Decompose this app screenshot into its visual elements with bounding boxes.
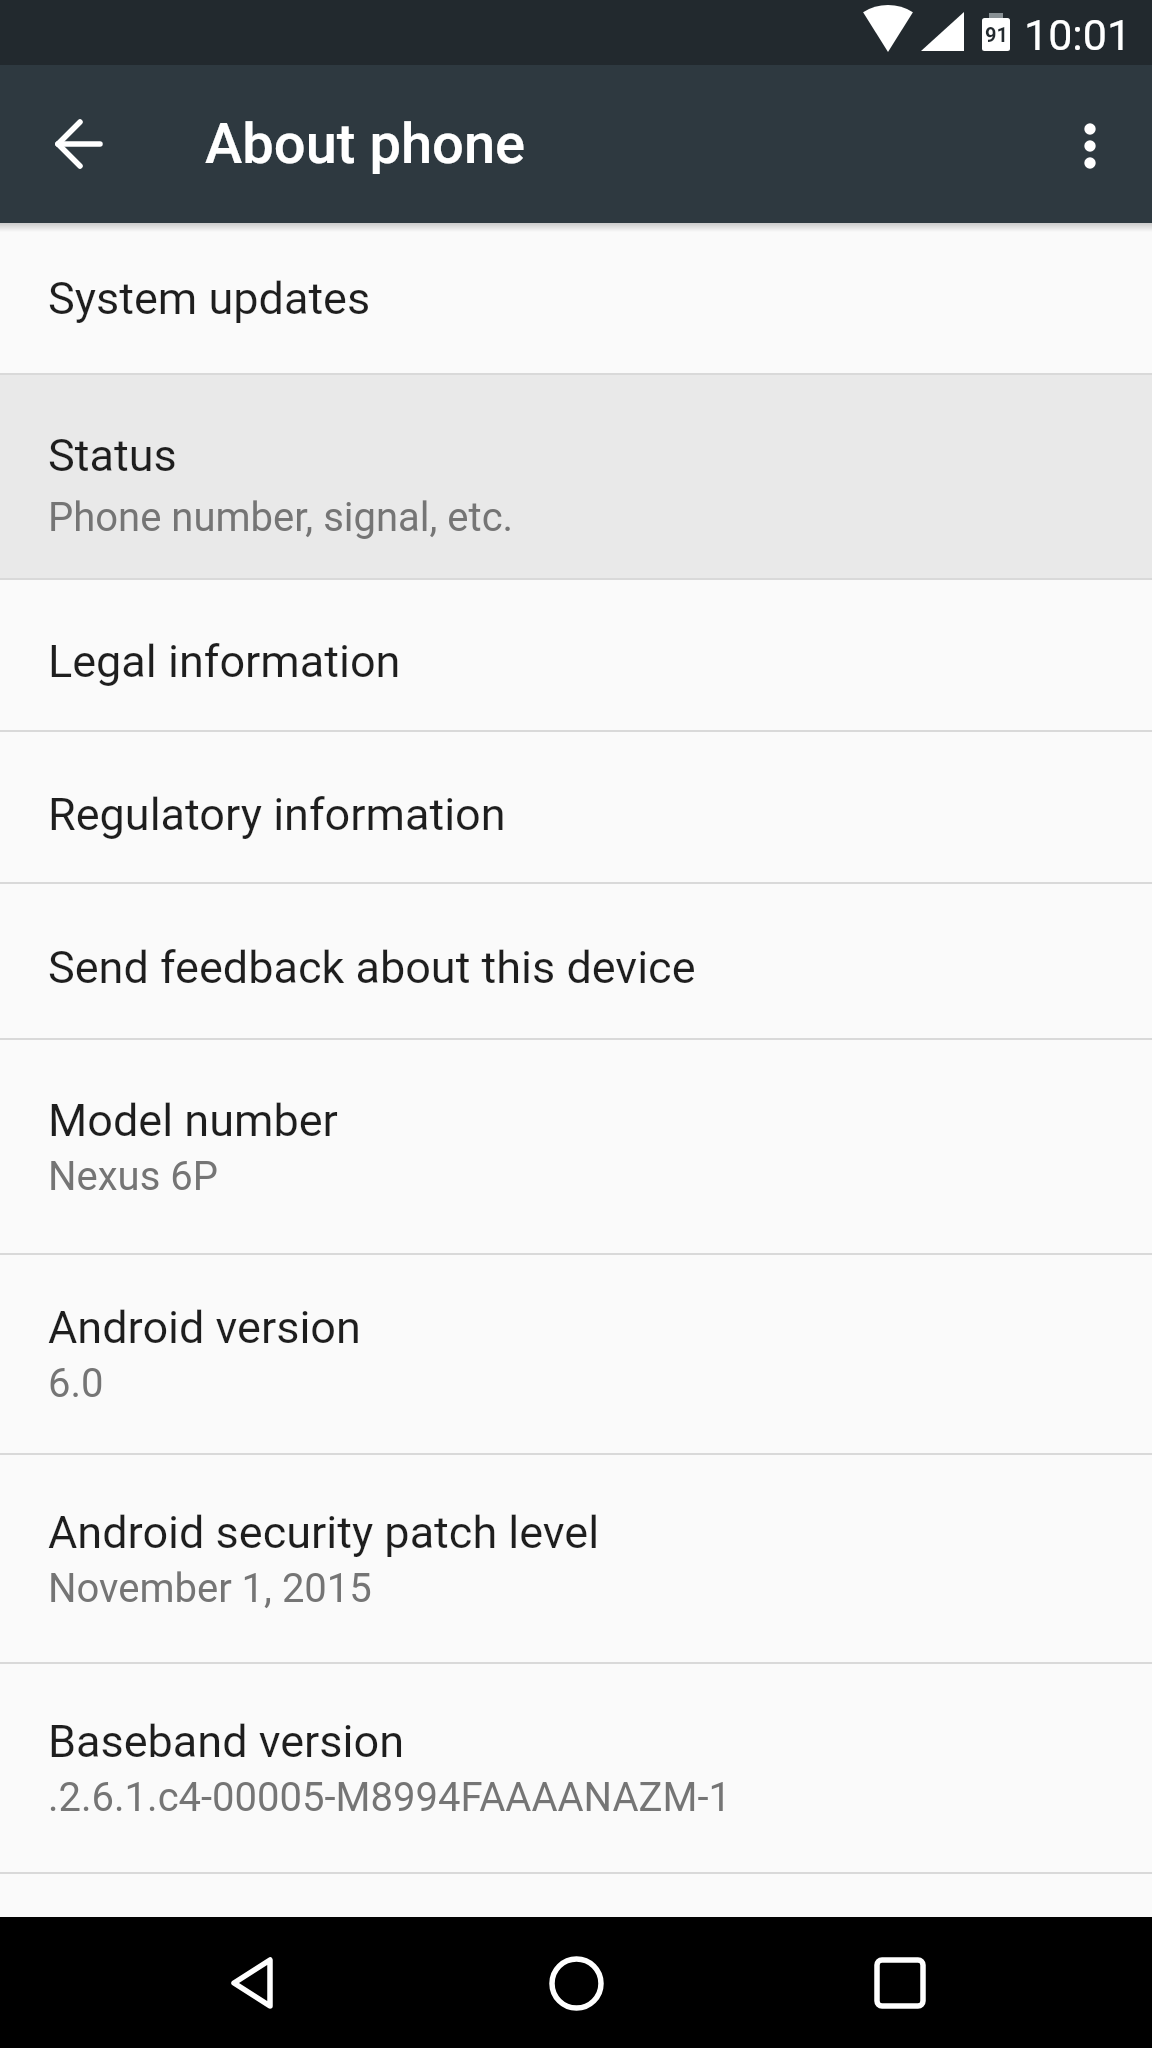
button[interactable] xyxy=(198,1929,306,2037)
staticText: Model number xyxy=(48,1094,338,1147)
button[interactable] xyxy=(522,1929,630,2037)
staticText: Android security patch level xyxy=(48,1506,600,1559)
staticText: Phone number, signal, etc. xyxy=(48,494,514,541)
button[interactable]: Legal information xyxy=(0,580,1152,730)
staticText: Regulatory information xyxy=(48,788,506,841)
button[interactable]: Status xyxy=(0,375,1152,578)
button[interactable]: Android security patch level xyxy=(0,1455,1152,1662)
staticText: Legal information xyxy=(48,635,401,688)
button[interactable] xyxy=(846,1929,954,2037)
staticText: About phone xyxy=(205,111,526,177)
staticText: Send feedback about this device xyxy=(48,941,696,994)
button[interactable] xyxy=(40,105,118,183)
staticText: System updates xyxy=(48,272,371,325)
staticText: 10:01 xyxy=(1024,10,1132,60)
staticText: 91 xyxy=(985,23,1008,46)
staticText: Nexus 6P xyxy=(48,1153,218,1200)
staticText: Baseband version xyxy=(48,1715,405,1768)
button[interactable]: Baseband version xyxy=(0,1664,1152,1872)
button[interactable]: Regulatory information xyxy=(0,732,1152,882)
button[interactable]: Send feedback about this device xyxy=(0,884,1152,1038)
staticText: 6.0 xyxy=(48,1360,104,1407)
staticText: November 1, 2015 xyxy=(48,1565,372,1612)
button[interactable] xyxy=(1057,111,1123,177)
button[interactable]: Model number xyxy=(0,1040,1152,1253)
button[interactable]: Android version xyxy=(0,1255,1152,1453)
button[interactable]: System updates xyxy=(0,223,1152,373)
staticText: Android version xyxy=(48,1301,361,1354)
staticText: .2.6.1.c4-00005-M8994FAAAANAZM-1 xyxy=(48,1774,731,1821)
staticText: Status xyxy=(48,429,177,482)
